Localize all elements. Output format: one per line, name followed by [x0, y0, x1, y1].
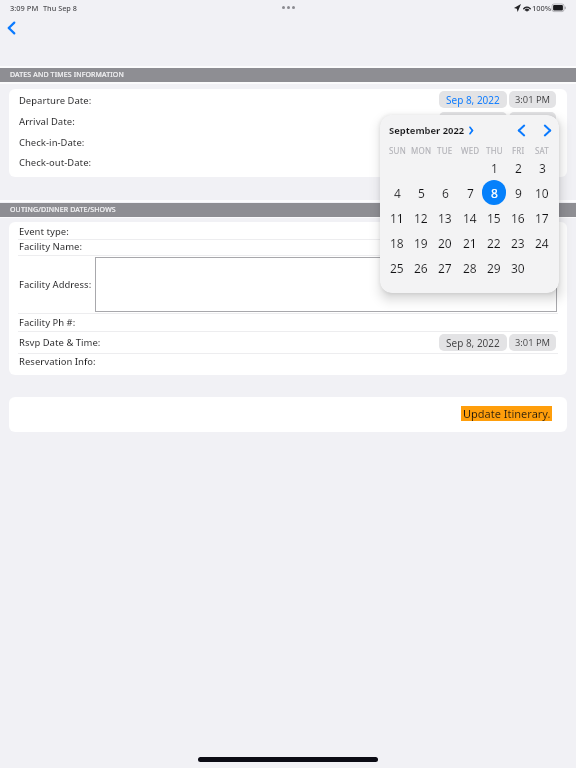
button[interactable]: 3:01 PM [509, 91, 556, 108]
button[interactable]: Sep 8, 2022 [439, 334, 507, 351]
button[interactable]: 3:01 PM [509, 112, 556, 129]
button[interactable]: 14 [458, 205, 482, 230]
staticText: Update Itinerary. [463, 406, 551, 421]
button[interactable] [9, 89, 567, 177]
staticText: 26 [414, 260, 428, 276]
staticText: 13 [438, 210, 452, 226]
button[interactable]: DATES AND TIMES INFORMATION [0, 68, 576, 82]
staticText: 25 [390, 260, 404, 276]
button[interactable]: 1 [482, 155, 506, 180]
button[interactable]: 3:01 PM [509, 334, 556, 351]
staticText: FRI [512, 145, 525, 156]
staticText: 3:01 PM [515, 93, 551, 106]
button[interactable]: 29 [482, 255, 506, 280]
button[interactable]: Sep 8, 2022 [439, 91, 507, 108]
button[interactable]: 4 [385, 180, 409, 205]
staticText: 22 [487, 235, 501, 251]
button[interactable]: 21 [458, 230, 482, 255]
staticText: Sep 8, 2022 [446, 114, 500, 128]
staticText: Sep 8, 2022 [446, 336, 500, 350]
staticText: Check-in-Date: [19, 136, 85, 149]
staticText: 30 [511, 260, 525, 276]
staticText: 3:01 PM [515, 114, 551, 127]
staticText: Departure Date: [19, 94, 92, 107]
button[interactable]: 30 [506, 255, 530, 280]
staticText: 3:09 PM [10, 3, 39, 13]
button[interactable] [9, 222, 567, 375]
staticText: OUTING/DINNER DATE/SHOWS [10, 205, 116, 215]
staticText: 100% [532, 3, 552, 13]
staticText: 24 [535, 235, 549, 251]
button[interactable]: 3 [530, 155, 554, 180]
button[interactable]: 12 [409, 205, 433, 230]
staticText: 17 [535, 210, 549, 226]
staticText: 18 [390, 235, 404, 251]
button[interactable]: 25 [385, 255, 409, 280]
staticText: 27 [438, 260, 452, 276]
button[interactable]: 13 [433, 205, 457, 230]
button[interactable]: 19 [409, 230, 433, 255]
button[interactable]: 8 [482, 180, 506, 205]
button[interactable] [9, 397, 567, 432]
staticText: 10 [535, 185, 549, 201]
staticText: Reservation Info: [19, 355, 96, 368]
button[interactable]: 16 [506, 205, 530, 230]
staticText: 15 [487, 210, 501, 226]
staticText: Rsvp Date & Time: [19, 336, 101, 349]
button[interactable]: Update Itinerary. [461, 406, 552, 421]
button[interactable]: 2 [506, 155, 530, 180]
staticText: 20 [438, 235, 452, 251]
staticText: 2 [515, 160, 522, 176]
staticText: 1 [491, 160, 498, 176]
staticText: MON [411, 145, 432, 156]
staticText: Event type: [19, 225, 69, 238]
button[interactable]: September 2022 [389, 123, 476, 137]
staticText: Facility Ph #: [19, 316, 76, 329]
staticText: 9 [515, 185, 522, 201]
staticText: 16 [511, 210, 525, 226]
button[interactable]: 27 [433, 255, 457, 280]
staticText: WED [461, 145, 480, 156]
staticText: 7 [467, 185, 474, 201]
staticText: Facility Name: [19, 240, 83, 253]
button[interactable]: 22 [482, 230, 506, 255]
staticText: 3:01 PM [515, 336, 551, 349]
button[interactable]: 11 [385, 205, 409, 230]
button[interactable]: 9 [506, 180, 530, 205]
staticText: 8 [491, 185, 498, 201]
button[interactable]: 6 [433, 180, 457, 205]
staticText: 19 [414, 235, 428, 251]
staticText: 12 [414, 210, 428, 226]
staticText: Sep 8, 2022 [446, 93, 500, 107]
button[interactable]: 10 [530, 180, 554, 205]
button[interactable]: 20 [433, 230, 457, 255]
button[interactable]: 5 [409, 180, 433, 205]
staticText: DATES AND TIMES INFORMATION [10, 70, 124, 80]
button[interactable]: 24 [530, 230, 554, 255]
button[interactable]: 26 [409, 255, 433, 280]
staticText: Check-out-Date: [19, 156, 92, 169]
staticText: 21 [463, 235, 477, 251]
staticText: 28 [463, 260, 477, 276]
button[interactable] [95, 257, 557, 312]
button[interactable]: 28 [458, 255, 482, 280]
button[interactable]: Sep 8, 2022 [439, 112, 507, 129]
staticText: 29 [487, 260, 501, 276]
staticText: 3 [539, 160, 546, 176]
button[interactable]: 15 [482, 205, 506, 230]
staticText: Thu Sep 8 [43, 3, 77, 13]
staticText: TUE [437, 145, 453, 156]
staticText: 6 [442, 185, 449, 201]
button[interactable]: Previous month [512, 121, 531, 140]
button[interactable]: Next month [538, 121, 557, 140]
button[interactable]: 7 [458, 180, 482, 205]
button[interactable]: Back [0, 16, 24, 40]
button[interactable]: 18 [385, 230, 409, 255]
button[interactable]: OUTING/DINNER DATE/SHOWS [0, 203, 576, 217]
button[interactable]: 17 [530, 205, 554, 230]
staticText: SUN [389, 145, 406, 156]
staticText: 4 [394, 185, 401, 201]
button[interactable]: 23 [506, 230, 530, 255]
staticText: SAT [535, 145, 549, 156]
staticText: Facility Address: [19, 278, 92, 291]
